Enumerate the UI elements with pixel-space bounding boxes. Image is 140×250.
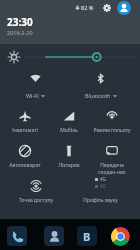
button[interactable]: Auto brightness [7,50,21,64]
button[interactable]: МобІль [47,100,90,135]
button[interactable]: Sound profile [68,170,133,205]
button[interactable]: Phone [7,226,27,246]
button[interactable]: Chrome [110,226,130,246]
staticText: Ліхтарик [58,162,80,169]
button[interactable]: Wi-Fi [3,68,68,99]
button[interactable]: Режим польоту [90,100,133,135]
staticText: Bluetooth [85,92,111,99]
staticText: 2016-2-20 [7,29,33,36]
button[interactable]: Bluetooth [68,68,133,99]
button[interactable]: Передача гоодан-них [90,135,133,170]
button[interactable]: Browser [77,226,97,246]
button[interactable]: Інавтоматі [3,100,47,135]
button[interactable]: Точка доступу [3,170,68,205]
staticText: 4G [100,176,106,182]
staticText: 23:30 [7,15,33,29]
staticText: B [83,229,91,244]
button[interactable]: Brightness [24,50,135,64]
staticText: Інавтоматі [12,127,38,134]
staticText: 4G [100,183,106,189]
staticText: Автоповорот [9,162,41,169]
staticText: Передача гоодан-них [98,162,126,175]
staticText: Профіль звуку [83,197,118,204]
staticText: Wi-Fi [26,92,39,99]
staticText: Точка доступу [19,197,53,204]
staticText: МобІль [60,127,78,134]
staticText: 82 % [81,4,94,11]
button[interactable]: Ліхтарик [47,135,90,170]
staticText: Режим польоту [93,127,131,134]
button[interactable]: Settings [101,2,112,13]
button[interactable]: Автоповорот [3,135,47,170]
button[interactable]: User profile [117,1,131,15]
button[interactable]: Contacts [44,226,64,246]
